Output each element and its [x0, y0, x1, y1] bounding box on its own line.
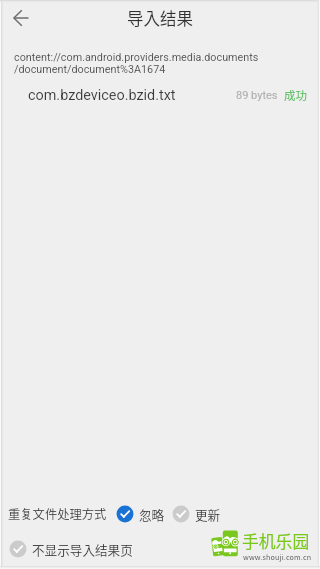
staticText: 手机乐园: [242, 529, 310, 553]
button[interactable]: 忽略: [116, 505, 165, 523]
staticText: 导入结果: [127, 6, 193, 30]
button[interactable]: com.bzdeviceo.bzid.txt: [0, 82, 320, 108]
staticText: 更新: [195, 505, 221, 523]
staticText: 不显示导入结果页: [32, 540, 133, 558]
staticText: www.shouji.com.cn: [243, 552, 312, 562]
staticText: 89 bytes: [236, 89, 278, 102]
button[interactable]: 更新: [172, 505, 221, 523]
staticText: 重复文件处理方式: [8, 505, 107, 523]
button[interactable]: 不显示导入结果页: [0, 535, 320, 563]
staticText: content://com.android.providers.media.do…: [14, 51, 259, 76]
staticText: 成功: [284, 87, 307, 104]
staticText: com.bzdeviceo.bzid.txt: [28, 87, 176, 104]
button[interactable]: Back: [8, 5, 34, 31]
staticText: 忽略: [139, 505, 165, 523]
